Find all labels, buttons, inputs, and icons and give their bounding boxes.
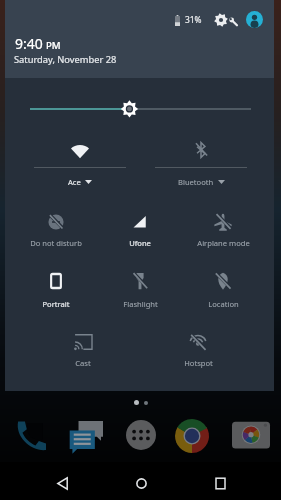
button[interactable]: Messages [64, 414, 108, 458]
button[interactable]: Bluetooth [141, 128, 261, 192]
button[interactable]: Portrait [18, 268, 94, 306]
staticText: 31% [185, 14, 202, 25]
staticText: Cast [75, 358, 91, 368]
button[interactable]: Back [38, 465, 86, 500]
staticText: Portrait [42, 299, 70, 309]
button[interactable]: Cast [45, 329, 121, 367]
staticText: Ufone [129, 238, 151, 248]
staticText: PM [46, 39, 61, 52]
button[interactable]: All apps [119, 413, 163, 457]
button[interactable]: Phone [8, 413, 52, 457]
staticText: Saturday, November 28 [14, 53, 117, 66]
staticText: Hotspot [184, 358, 213, 368]
staticText: Airplane mode [197, 238, 250, 248]
button[interactable]: Settings [211, 9, 237, 31]
staticText: 9:40 [15, 34, 43, 53]
button[interactable]: Flashlight [102, 268, 178, 306]
staticText: Ace [68, 177, 81, 187]
button[interactable]: Do not disturb [18, 209, 94, 247]
staticText: Flashlight [123, 299, 158, 309]
button[interactable]: Recent apps [196, 465, 244, 500]
button[interactable]: Hotspot [160, 329, 236, 367]
button[interactable]: Location [185, 268, 261, 306]
button[interactable]: Chrome [170, 414, 214, 458]
button[interactable]: Brightness [5, 94, 274, 124]
button[interactable]: Home [117, 465, 165, 500]
staticText: Do not disturb [30, 238, 82, 248]
button[interactable]: Ace [20, 128, 140, 192]
button[interactable]: Ufone [102, 209, 178, 247]
button[interactable]: Camera [229, 415, 273, 459]
staticText: Location [208, 299, 239, 309]
button[interactable]: User account [246, 11, 263, 28]
button[interactable]: Airplane mode [185, 209, 261, 247]
staticText: Bluetooth [178, 177, 214, 187]
